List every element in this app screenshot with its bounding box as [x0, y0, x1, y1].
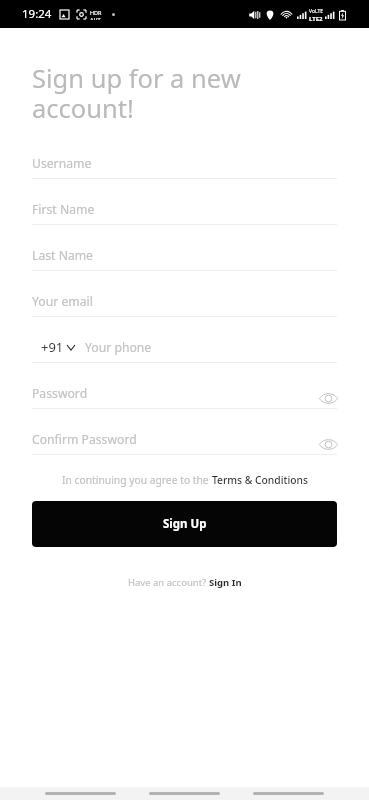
staticText: +91 — [41, 338, 64, 356]
staticText: Sign In — [209, 576, 242, 589]
staticText: Username — [32, 155, 92, 172]
staticText: Your phone — [85, 339, 152, 356]
staticText: Confirm Password — [32, 431, 137, 448]
staticText: Sign Up — [163, 516, 207, 532]
button[interactable]: Password — [32, 367, 337, 408]
button[interactable]: Sign Up — [32, 501, 337, 547]
staticText: Your email — [32, 293, 93, 310]
staticText: Password — [32, 385, 88, 402]
staticText: Have an account? — [128, 576, 209, 589]
button[interactable]: Home — [149, 792, 220, 795]
button[interactable]: Confirm Password — [32, 413, 337, 454]
button[interactable]: Back — [253, 792, 324, 795]
staticText: 19:24 — [22, 6, 52, 22]
button[interactable]: First Name — [32, 183, 337, 224]
staticText: VoLTE — [309, 8, 323, 15]
button[interactable]: Username — [32, 137, 337, 178]
staticText: AUTO — [90, 16, 103, 20]
button[interactable]: Terms & Conditions — [212, 469, 308, 491]
staticText: LTE2 — [309, 15, 323, 21]
button[interactable]: Sign In — [209, 572, 242, 593]
button[interactable]: Your phone — [75, 321, 337, 362]
staticText: In continuing you agree to the — [62, 473, 212, 487]
staticText: First Name — [32, 201, 95, 218]
staticText: Sign up for a new account! — [32, 61, 241, 126]
button[interactable]: Recent apps — [45, 792, 116, 795]
staticText: HDR — [90, 9, 102, 16]
button[interactable]: Last Name — [32, 229, 337, 270]
staticText: Last Name — [32, 247, 93, 264]
button[interactable]: Your email — [32, 275, 337, 316]
button[interactable]: +91 — [32, 338, 75, 362]
staticText: Terms & Conditions — [212, 473, 308, 487]
button[interactable]: Show password — [316, 432, 340, 456]
button[interactable]: Show password — [316, 386, 340, 410]
